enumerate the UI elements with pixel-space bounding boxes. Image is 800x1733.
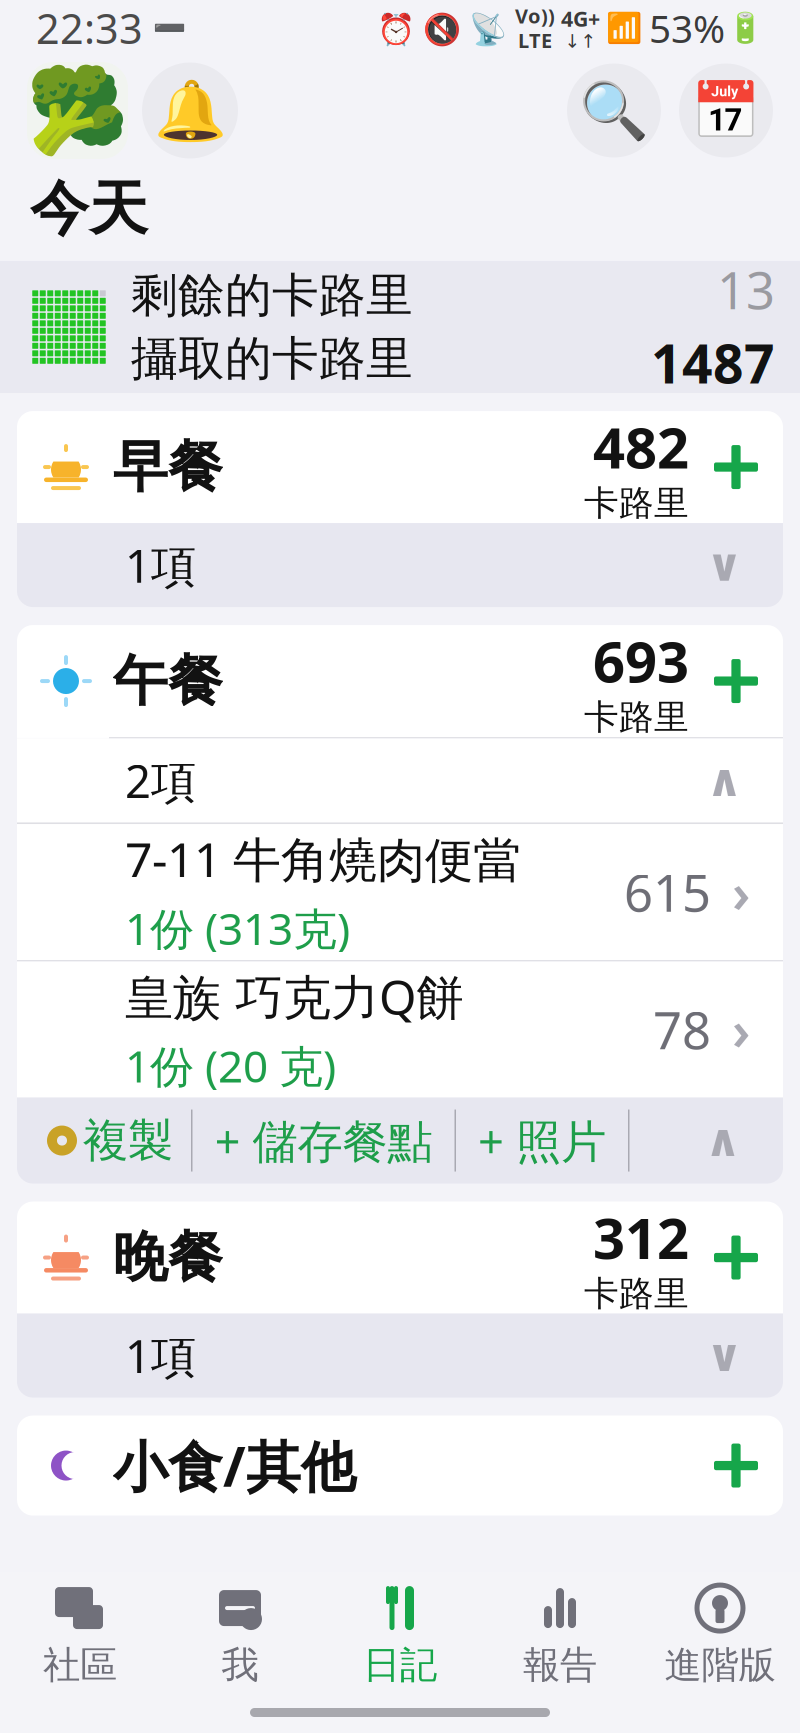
button[interactable]: 2項 [17,739,783,823]
button[interactable]: Calendar [679,63,773,157]
button[interactable]: Profile [27,62,128,159]
staticText: 🔋 [727,11,764,45]
button[interactable]: 報告 [480,1576,640,1696]
button[interactable]: 7-11 牛角燒肉便當 [17,824,783,960]
staticText: 7-11 牛角燒肉便當 [125,827,521,891]
staticText: ⏰ 🔇 📡 [377,8,507,48]
staticText: 13 [717,256,775,323]
staticText: ∧ [704,1115,741,1166]
button[interactable]: 日記 [320,1576,480,1696]
button[interactable]: Add food to 早餐 [703,430,769,504]
staticText: LTE [518,27,552,54]
button[interactable]: 1項 [17,523,783,607]
button[interactable]: 複製 [29,1098,191,1184]
staticText: 今天 [30,173,148,245]
staticText: 卡路里 [584,1272,689,1315]
staticText: 1份 (20 克) [125,1036,336,1095]
button[interactable]: + 儲存餐點 [192,1098,454,1184]
staticText: 🔔 [153,77,226,144]
staticText: › [732,857,750,927]
staticText: ↓↑ [564,31,596,52]
staticText: 📅 [691,78,761,142]
button[interactable]: + 照片 [456,1098,628,1184]
staticText: 22:33 [36,1,143,55]
button[interactable]: 我 [160,1576,320,1696]
button[interactable]: Collapse [693,1098,753,1184]
staticText: 693 [593,624,689,698]
staticText: 報告 [523,1642,597,1688]
staticText: ➖ [153,13,186,43]
staticText: 午餐 [113,647,223,715]
staticText: Vo)) [515,2,555,29]
staticText: 312 [593,1200,689,1274]
staticText: 1份 (313克) [125,899,350,957]
staticText: 小食/其他 [113,1429,356,1502]
button[interactable]: 進階版 [640,1576,800,1696]
staticText: 482 [593,410,689,484]
staticText: + 儲存餐點 [214,1110,432,1171]
button[interactable]: Add food to 午餐 [703,644,769,718]
staticText: 社區 [43,1642,117,1688]
staticText: 53% [649,2,725,54]
staticText: 皇族 巧克力Q餅 [125,964,464,1028]
staticText: 1487 [651,327,775,398]
button[interactable]: Add food to 小食/其他 [703,1429,769,1503]
button[interactable]: Notifications [142,62,238,158]
staticText: 卡路里 [584,696,689,739]
staticText: ∨ [706,1330,743,1381]
staticText: 日記 [363,1642,437,1688]
staticText: 我 [221,1642,258,1688]
staticText: 🥦 [26,63,129,158]
staticText: 複製 [83,1113,173,1168]
button[interactable]: 1項 [17,1314,783,1398]
button[interactable]: 皇族 巧克力Q餅 [17,962,783,1098]
staticText: 1項 [125,535,196,595]
staticText: 卡路里 [584,482,689,525]
staticText: 78 [653,996,711,1063]
staticText: 攝取的卡路里 [131,330,413,387]
button[interactable]: Add food to 晚餐 [703,1221,769,1295]
button[interactable]: 社區 [0,1576,160,1696]
button[interactable]: Search [567,63,661,157]
staticText: 4G+ [561,4,600,32]
staticText: 晚餐 [113,1224,223,1291]
staticText: 1項 [125,1325,196,1386]
staticText: + 照片 [478,1110,606,1171]
staticText: ∧ [706,755,743,806]
staticText: › [732,994,750,1065]
staticText: 📶 [606,11,643,45]
staticText: 早餐 [113,433,223,501]
staticText: 🔍 [579,78,649,142]
staticText: ∨ [706,539,743,591]
staticText: 615 [624,858,711,926]
staticText: 進階版 [664,1642,775,1688]
staticText: 2項 [125,750,196,811]
staticText: 剩餘的卡路里 [131,267,413,324]
